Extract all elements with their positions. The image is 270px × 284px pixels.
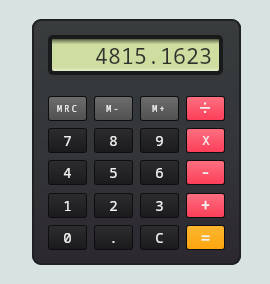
- button[interactable]: MRC: [49, 97, 86, 120]
- button[interactable]: 8: [95, 129, 132, 152]
- staticText: 4: [63, 163, 72, 182]
- staticText: MRC: [57, 103, 79, 115]
- button[interactable]: 2: [95, 194, 132, 217]
- button[interactable]: Plus: [187, 194, 224, 217]
- button[interactable]: 9: [141, 129, 178, 152]
- staticText: 9: [155, 131, 164, 150]
- button[interactable]: C: [141, 226, 178, 249]
- button[interactable]: Minus: [187, 161, 224, 184]
- button[interactable]: M-: [95, 97, 132, 120]
- staticText: 0: [63, 228, 72, 247]
- staticText: M-: [106, 103, 121, 115]
- button[interactable]: Equals: [187, 226, 224, 249]
- staticText: 4815.1623: [95, 41, 213, 71]
- button[interactable]: 5: [95, 161, 132, 184]
- button[interactable]: Divide: [187, 97, 224, 120]
- button[interactable]: Multiply: [187, 129, 224, 152]
- button[interactable]: 6: [141, 161, 178, 184]
- button[interactable]: .: [95, 226, 132, 249]
- staticText: 3: [155, 196, 164, 215]
- button[interactable]: 0: [49, 226, 86, 249]
- staticText: .: [109, 228, 118, 247]
- staticText: X: [202, 132, 210, 149]
- staticText: 6: [155, 163, 164, 182]
- staticText: 2: [109, 196, 118, 215]
- staticText: 5: [109, 163, 118, 182]
- staticText: 1: [63, 196, 72, 215]
- staticText: C: [155, 228, 164, 247]
- button[interactable]: 7: [49, 129, 86, 152]
- button[interactable]: M+: [141, 97, 178, 120]
- button[interactable]: 3: [141, 194, 178, 217]
- button[interactable]: 4: [49, 161, 86, 184]
- staticText: M+: [152, 103, 167, 115]
- staticText: 7: [63, 131, 72, 150]
- staticText: 8: [109, 131, 118, 150]
- button[interactable]: 1: [49, 194, 86, 217]
